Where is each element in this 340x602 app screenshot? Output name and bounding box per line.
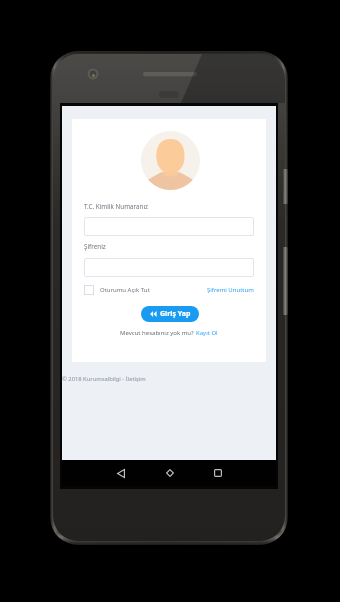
staticText: Mevcut hesabınız yok mu? <box>120 329 196 337</box>
button[interactable]: Şifremi Unuttum <box>207 286 254 294</box>
button[interactable]: Kayıt Ol <box>196 329 218 337</box>
button[interactable]: Giriş Yap <box>141 306 199 322</box>
button[interactable]: Back <box>111 463 131 483</box>
staticText: Şifreniz <box>84 242 106 251</box>
button[interactable]: Home <box>160 463 180 483</box>
staticText: Giriş Yap <box>160 309 191 319</box>
staticText: © 2018 Kurumsalbilgi - İletişim <box>62 375 146 383</box>
staticText: T.C. Kimlik Numaranız <box>84 202 149 211</box>
button[interactable]: Oturumu Açık Tut <box>84 285 150 295</box>
staticText: Oturumu Açık Tut <box>100 286 150 294</box>
button[interactable] <box>84 217 254 236</box>
button[interactable]: Recent apps <box>208 463 228 483</box>
button[interactable] <box>84 258 254 277</box>
